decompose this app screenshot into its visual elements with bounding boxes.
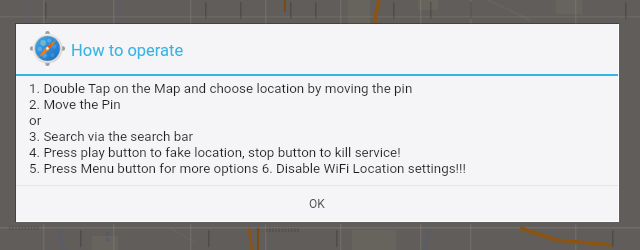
button[interactable]: OK <box>16 186 618 221</box>
staticText: How to operate <box>71 41 184 60</box>
staticText: 5. Press Menu button for more options 6.… <box>29 161 466 177</box>
other: App icon <box>31 32 64 65</box>
staticText: 2. Move the Pin <box>29 97 121 113</box>
staticText: 4. Press play button to fake location, s… <box>29 145 401 161</box>
staticText: 3. Search via the search bar <box>29 129 194 145</box>
staticText: or <box>29 113 42 129</box>
staticText: 1. Double Tap on the Map and choose loca… <box>29 81 413 97</box>
staticText: OK <box>309 197 325 211</box>
